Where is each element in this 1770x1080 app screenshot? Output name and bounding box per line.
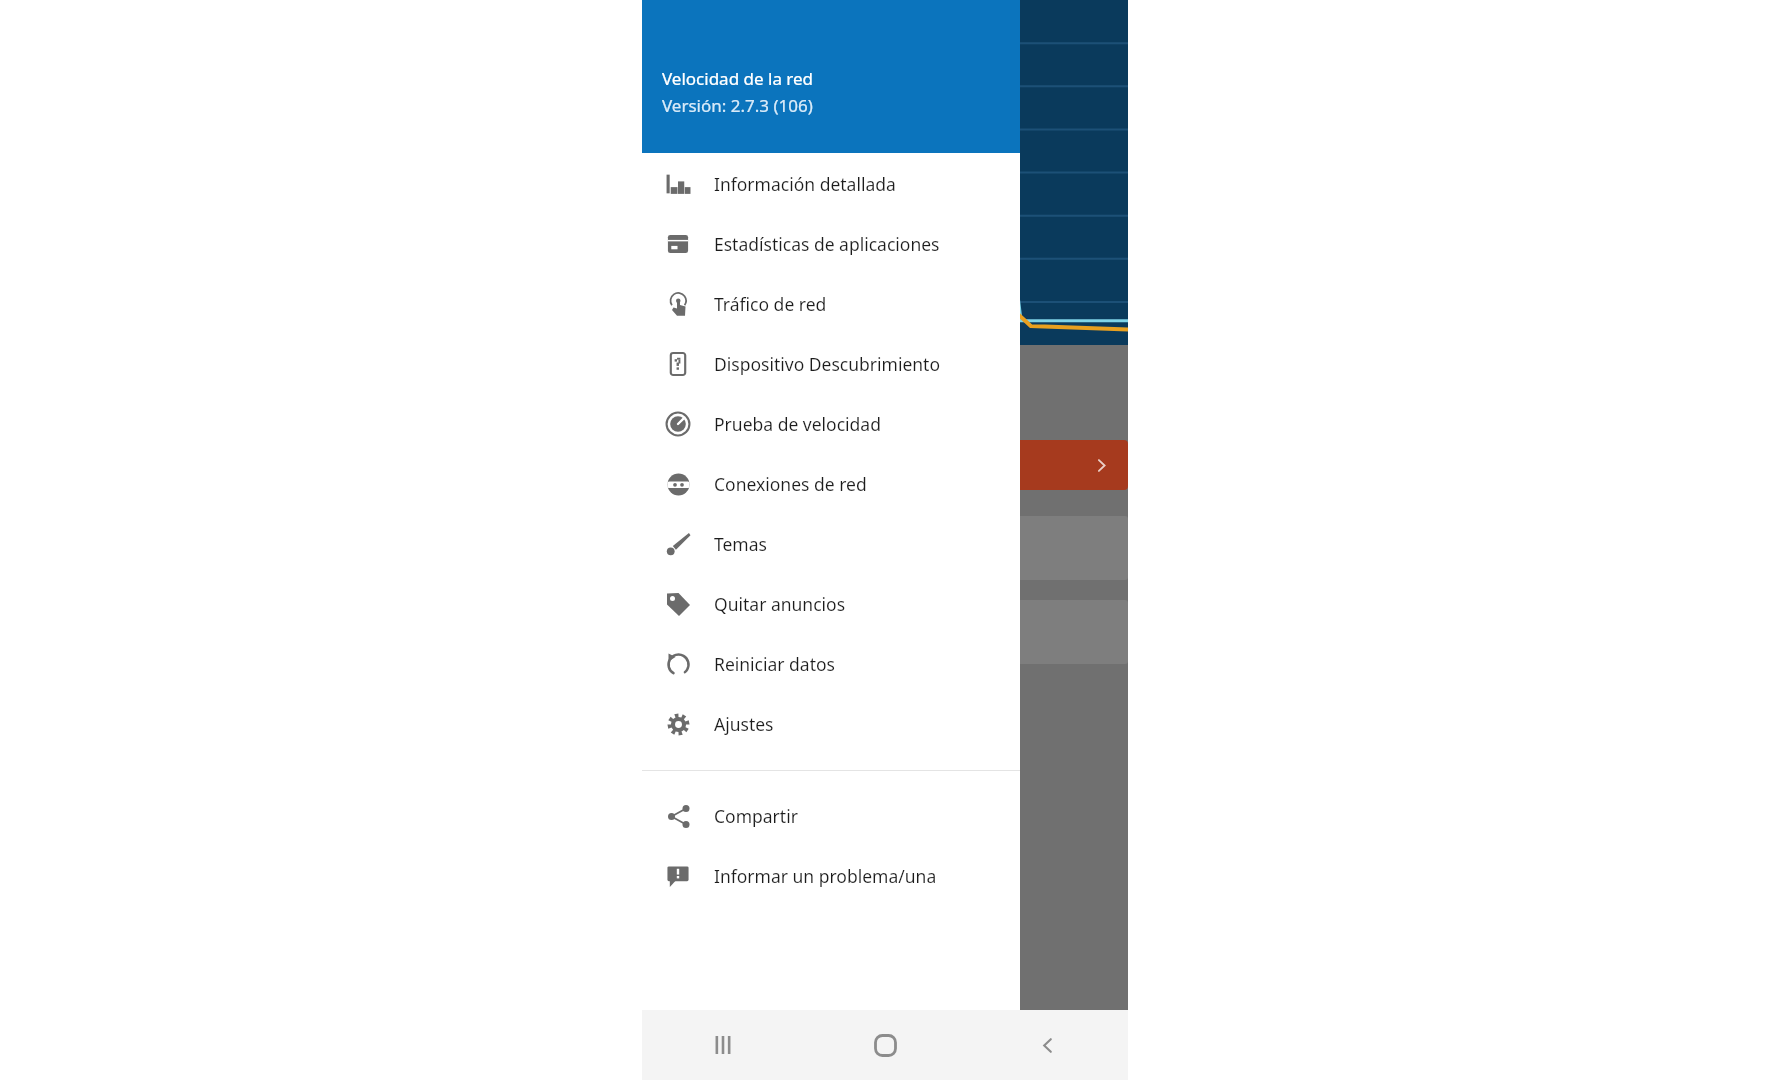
staticText: Prueba de velocidad bbox=[714, 412, 881, 436]
staticText: Dispositivo Descubrimiento bbox=[714, 352, 940, 376]
staticText: Temas bbox=[714, 532, 767, 556]
staticText: Informar un problema/una bbox=[714, 864, 937, 888]
staticText: Ajustes bbox=[714, 712, 774, 736]
staticText: Conexiones de red bbox=[714, 472, 867, 496]
button[interactable]: Estadísticas de aplicaciones bbox=[642, 214, 1020, 274]
staticText: Quitar anuncios bbox=[714, 592, 846, 616]
button[interactable]: Home bbox=[804, 1010, 966, 1080]
button[interactable]: Recents bbox=[642, 1010, 804, 1080]
staticText: Versión: 2.7.3 (106) bbox=[662, 94, 813, 117]
button[interactable]: Compartir bbox=[642, 786, 1020, 846]
button[interactable]: s más bbox=[870, 440, 1128, 490]
button[interactable]: Temas bbox=[642, 514, 1020, 574]
button[interactable]: Conexiones de red bbox=[642, 454, 1020, 514]
button[interactable]: Back bbox=[966, 1010, 1128, 1080]
button[interactable]: Dispositivo Descubrimiento bbox=[642, 334, 1020, 394]
staticText: Compartir bbox=[714, 804, 798, 828]
button[interactable]: Informar un problema/una bbox=[642, 846, 1020, 906]
button[interactable]: Ajustes bbox=[642, 694, 1020, 754]
staticText: Wifi bbox=[870, 363, 913, 393]
button[interactable]: Información detallada bbox=[642, 154, 1020, 214]
staticText: Tráfico de red bbox=[714, 292, 827, 316]
button[interactable]: Tráfico de red bbox=[642, 274, 1020, 334]
staticText: Información detallada bbox=[714, 172, 896, 196]
button[interactable]: Prueba de velocidad bbox=[642, 394, 1020, 454]
staticText: Red bbox=[870, 401, 901, 424]
staticText: Velocidad de la red bbox=[662, 67, 814, 90]
staticText: Reiniciar datos bbox=[714, 652, 835, 676]
button[interactable]: Quitar anuncios bbox=[642, 574, 1020, 634]
staticText: Estadísticas de aplicaciones bbox=[714, 232, 940, 256]
button[interactable]: Reiniciar datos bbox=[642, 634, 1020, 694]
